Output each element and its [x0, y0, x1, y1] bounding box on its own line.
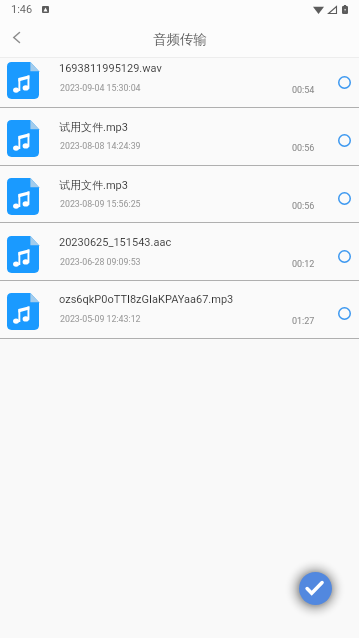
button[interactable]: 20230625_151543.aac — [0, 223, 359, 281]
button[interactable]: 试用文件.mp3 — [0, 165, 359, 223]
button[interactable]: Select — [332, 186, 356, 210]
button[interactable]: Select — [332, 128, 356, 152]
staticText: 00:56 — [292, 201, 315, 212]
button[interactable]: Select — [332, 244, 356, 268]
staticText: 2023-08-09 15:56:25 — [60, 199, 141, 209]
button[interactable]: 试用文件.mp3 — [0, 107, 359, 165]
button[interactable]: Select — [332, 70, 356, 94]
staticText: 20230625_151543.aac — [59, 236, 351, 249]
button[interactable]: ozs6qkP0oTTI8zGIaKPAYaa67.mp3 — [0, 280, 359, 338]
staticText: 01:27 — [292, 316, 315, 327]
button[interactable]: Select — [332, 301, 356, 325]
staticText: 音频传输 — [153, 31, 207, 48]
staticText: 00:12 — [292, 259, 315, 270]
staticText: 试用文件.mp3 — [59, 120, 351, 134]
staticText: 00:54 — [292, 85, 315, 96]
button[interactable]: 1693811995129.wav — [0, 49, 359, 107]
staticText: 2023-08-08 14:24:39 — [60, 141, 141, 151]
staticText: 试用文件.mp3 — [59, 178, 351, 192]
staticText: 1:46 — [11, 3, 33, 16]
staticText: 2023-06-28 09:09:53 — [60, 257, 141, 267]
button[interactable]: Back — [0, 21, 33, 54]
staticText: ozs6qkP0oTTI8zGIaKPAYaa67.mp3 — [59, 293, 351, 306]
staticText: 1693811995129.wav — [59, 62, 351, 75]
staticText: 00:56 — [292, 143, 315, 154]
staticText: 2023-09-04 15:30:04 — [60, 83, 141, 93]
staticText: 2023-05-09 12:43:12 — [60, 314, 141, 324]
button[interactable]: Confirm — [299, 572, 332, 605]
